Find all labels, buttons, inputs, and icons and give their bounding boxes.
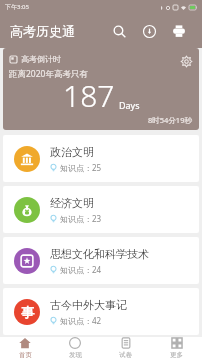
staticText: 首页	[19, 351, 32, 359]
button[interactable]: 发现	[50, 337, 100, 359]
button[interactable]: 事	[3, 288, 199, 335]
staticText: 高考倒计时	[21, 54, 61, 64]
button[interactable]: 更多	[151, 337, 202, 359]
staticText: 政治文明	[50, 145, 94, 159]
button[interactable]: 搜索	[104, 16, 134, 46]
staticText: 更多	[170, 351, 183, 359]
staticText: 发现	[69, 351, 82, 359]
button[interactable]: 试卷	[100, 337, 151, 359]
staticText: 知识点：23	[60, 213, 102, 224]
staticText: 试卷	[119, 351, 132, 359]
button[interactable]: 下载	[134, 16, 164, 46]
staticText: 知识点：25	[60, 162, 102, 173]
staticText: 古今中外大事记	[50, 298, 127, 312]
staticText: 距离2020年高考只有	[9, 68, 88, 80]
button[interactable]: 打印	[164, 16, 194, 46]
button[interactable]: 首页	[0, 337, 50, 359]
button[interactable]: 思想文化和科学技术	[3, 237, 199, 284]
staticText: 高考历史通	[10, 23, 75, 39]
staticText: 下午3:05	[5, 3, 29, 11]
staticText: 知识点：42	[60, 315, 102, 326]
staticText: 经济文明	[50, 196, 94, 210]
staticText: Days	[119, 99, 140, 111]
staticText: 知识点：24	[60, 264, 102, 275]
staticText: 事	[21, 304, 34, 320]
button[interactable]: 经济文明	[3, 186, 199, 233]
staticText: 187	[63, 75, 115, 116]
staticText: 8时54分19秒	[148, 115, 192, 125]
button[interactable]: 设置	[176, 51, 196, 71]
staticText: 思想文化和科学技术	[50, 247, 149, 261]
button[interactable]: 政治文明	[3, 135, 199, 182]
button[interactable]: 高考倒计时	[3, 48, 199, 130]
